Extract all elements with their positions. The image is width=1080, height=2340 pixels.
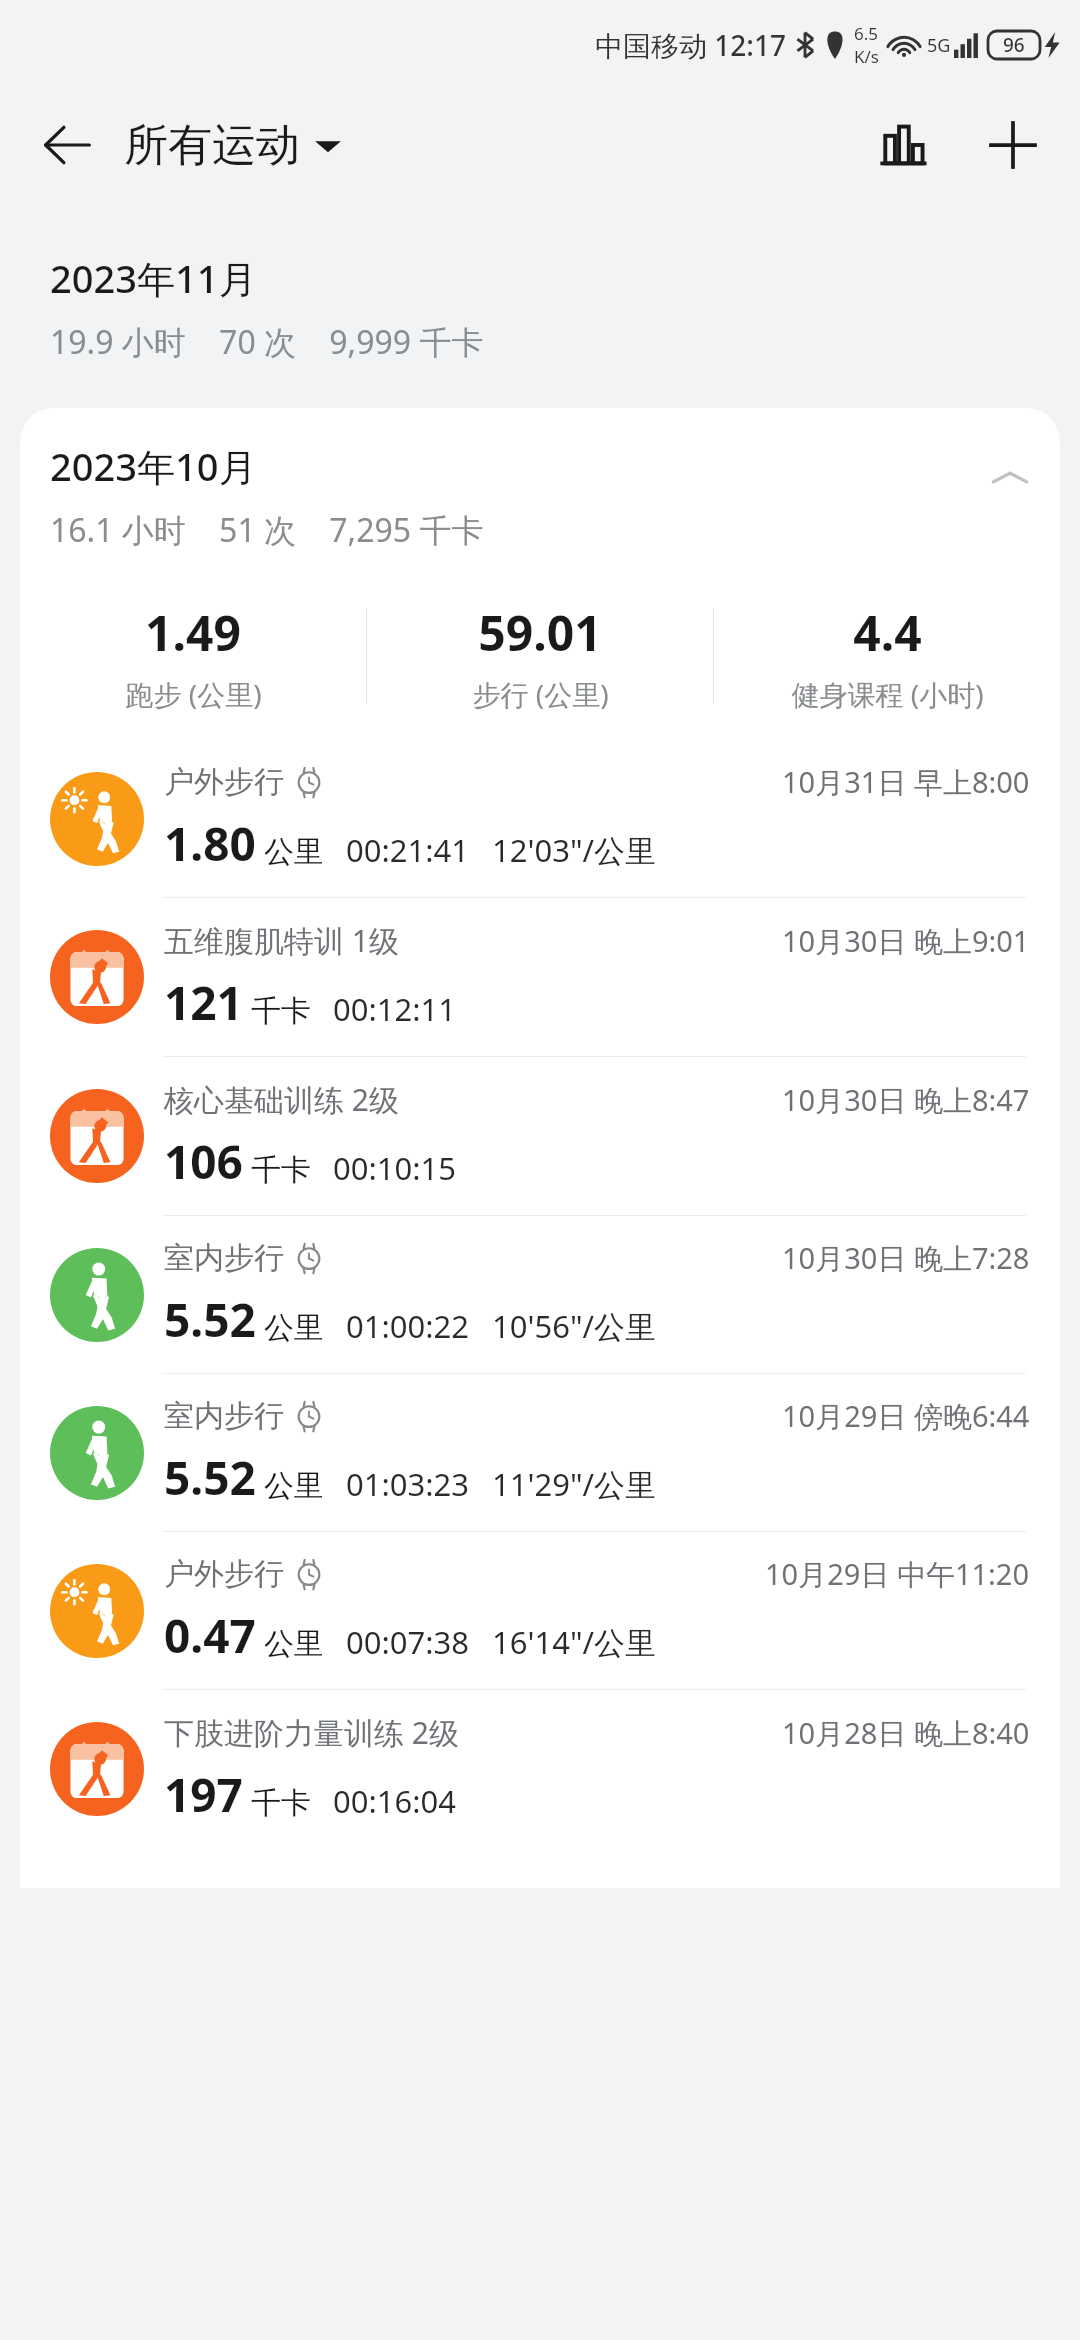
staticText: 00:10:15 [333,1147,457,1189]
staticText: 10'56"/公里 [492,1305,657,1347]
staticText: 0.47 [164,1604,256,1667]
staticText: 6.5 [854,22,879,45]
button[interactable]: 室内步行 [20,1373,1060,1531]
staticText: 106 [164,1130,243,1193]
staticText: 11'29"/公里 [492,1463,657,1505]
staticText: 公里 [264,1467,324,1505]
staticText: 公里 [264,833,324,871]
staticText: 1.80 [164,812,256,875]
staticText: 00:12:11 [333,988,457,1030]
staticText: 健身课程 (小时) [791,675,984,713]
staticText: 千卡 [251,992,311,1030]
staticText: 4.4 [853,600,922,665]
button[interactable]: 2023年11月 [0,252,1080,364]
staticText: 5G [927,33,951,58]
staticText: 10月31日 早上8:00 [782,762,1030,802]
staticText: 16'14"/公里 [492,1621,657,1663]
staticText: 步行 (公里) [472,675,609,713]
staticText: 1.49 [145,600,241,665]
button[interactable]: 所有运动 [124,118,342,173]
staticText: 室内步行 [164,1239,284,1277]
staticText: 121 [164,971,243,1034]
staticText: 01:03:23 [346,1463,470,1505]
staticText: 00:07:38 [346,1621,470,1663]
staticText: 10月30日 晚上8:47 [782,1080,1030,1120]
button[interactable]: 2023年10月 [20,440,1060,552]
staticText: 室内步行 [164,1397,284,1435]
staticText: 五维腹肌特训 1级 [164,920,399,961]
button[interactable]: 五维腹肌特训 1级 [20,897,1060,1056]
staticText: 公里 [264,1309,324,1347]
button[interactable]: 59.01 [367,600,713,713]
staticText: 197 [164,1763,243,1826]
staticText: 千卡 [251,1151,311,1189]
staticText: 2023年10月 [50,440,257,492]
staticText: K/s [854,45,879,68]
button[interactable]: 1.49 [20,600,366,713]
staticText: 5.52 [164,1288,256,1351]
staticText: 12'03"/公里 [492,829,657,871]
staticText: 所有运动 [124,118,300,173]
button[interactable]: Back [24,102,110,188]
staticText: 00:16:04 [333,1780,457,1822]
staticText: 59.01 [478,600,602,665]
staticText: 核心基础训练 2级 [164,1079,399,1120]
staticText: 户外步行 [164,1555,284,1593]
staticText: 00:21:41 [346,829,470,871]
button[interactable]: Statistics [860,102,946,188]
staticText: 10月29日 傍晚6:44 [782,1396,1030,1436]
staticText: 01:00:22 [346,1305,470,1347]
staticText: 19.9 小时 70 次 9,999 千卡 [50,320,484,364]
staticText: 96 [1003,32,1025,58]
button[interactable]: 核心基础训练 2级 [20,1056,1060,1215]
staticText: 公里 [264,1625,324,1663]
staticText: 千卡 [251,1784,311,1822]
staticText: 10月30日 晚上9:01 [782,921,1030,961]
button[interactable]: 下肢进阶力量训练 2级 [20,1689,1060,1848]
staticText: 跑步 (公里) [125,675,262,713]
button[interactable]: 室内步行 [20,1215,1060,1373]
staticText: 户外步行 [164,763,284,801]
staticText: 16.1 小时 51 次 7,295 千卡 [50,508,484,552]
staticText: 下肢进阶力量训练 2级 [164,1712,459,1753]
staticText: 10月30日 晚上7:28 [782,1238,1030,1278]
button[interactable]: Add record [970,102,1056,188]
staticText: 10月28日 晚上8:40 [782,1713,1030,1753]
staticText: 中国移动 12:17 [595,26,786,64]
staticText: 5.52 [164,1446,256,1509]
staticText: 2023年11月 [50,252,257,304]
button[interactable]: 户外步行 [20,1531,1060,1689]
button[interactable]: 户外步行 [20,740,1060,897]
button[interactable]: 4.4 [714,600,1060,713]
staticText: 10月29日 中午11:20 [765,1554,1030,1594]
